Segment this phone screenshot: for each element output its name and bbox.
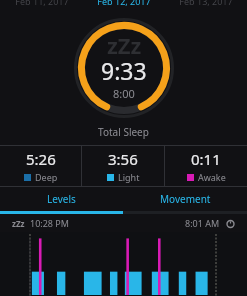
- staticText: Feb 12, 2017: [97, 0, 151, 6]
- button[interactable]: Feb 12, 2017: [83, 0, 165, 11]
- staticText: 8:00: [113, 86, 135, 101]
- staticText: 5:26: [26, 149, 56, 169]
- staticText: 0:11: [191, 149, 221, 169]
- button[interactable]: Feb 13, 2017: [165, 0, 247, 11]
- staticText: zZz: [12, 218, 25, 229]
- staticText: 8:01 AM: [185, 217, 220, 229]
- button[interactable]: Levels: [0, 187, 123, 211]
- staticText: Feb 11, 2017: [15, 0, 69, 6]
- staticText: Feb 13, 2017: [179, 0, 233, 6]
- button[interactable]: 5:26: [0, 146, 81, 186]
- staticText: 3:56: [108, 149, 138, 169]
- button[interactable]: Movement: [123, 187, 247, 211]
- button[interactable]: 3:56: [82, 146, 164, 186]
- button[interactable]: Feb 11, 2017: [0, 0, 83, 11]
- staticText: Deep: [35, 171, 58, 183]
- staticText: zZz: [107, 30, 142, 60]
- staticText: Movement: [160, 192, 211, 206]
- staticText: Light: [118, 171, 140, 183]
- staticText: Levels: [47, 192, 76, 206]
- staticText: Awake: [198, 171, 226, 183]
- staticText: 10:28 PM: [30, 217, 69, 229]
- button[interactable]: 0:11: [165, 146, 247, 186]
- staticText: 9:33: [101, 55, 147, 86]
- other: Alarm: [226, 219, 235, 228]
- staticText: Total Sleep: [0, 125, 247, 139]
